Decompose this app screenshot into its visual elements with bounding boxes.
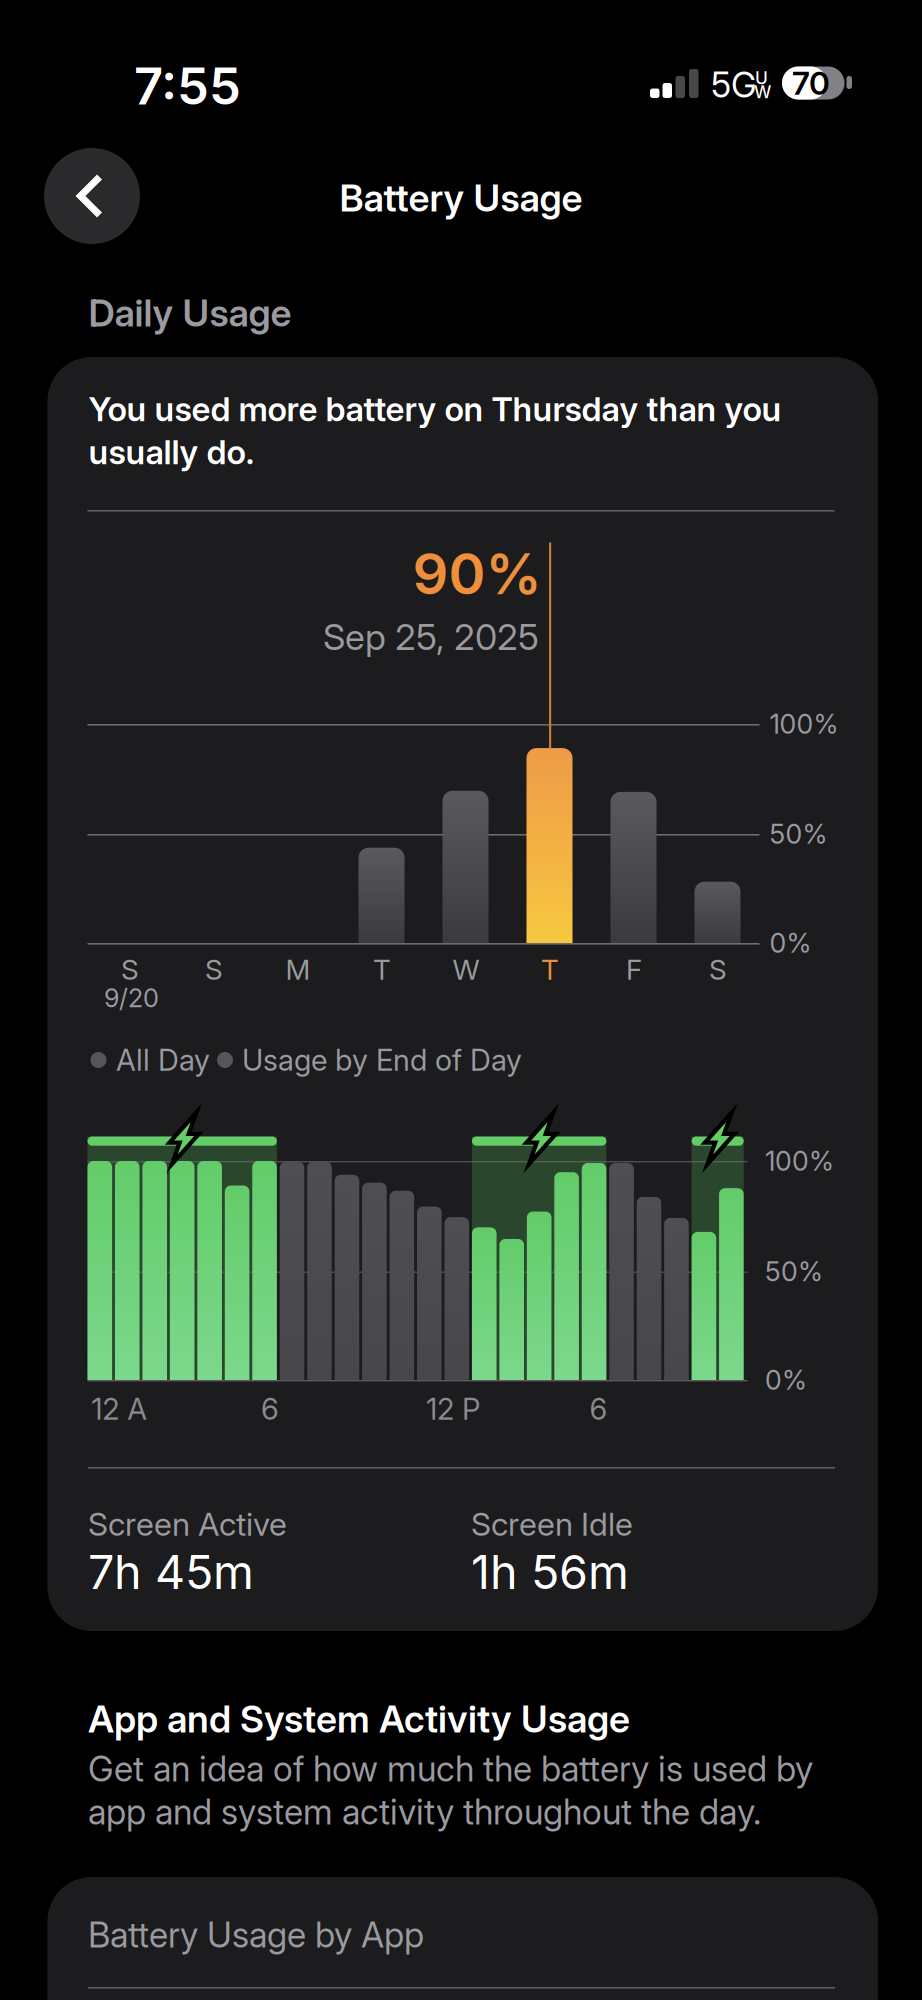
staticText: T (373, 953, 391, 986)
staticText: app and system activity throughout the d… (88, 1791, 761, 1833)
staticText: 6 (589, 1391, 607, 1427)
staticText: 7:55 (134, 55, 241, 117)
staticText: App and System Activity Usage (88, 1696, 630, 1742)
staticText: W (754, 81, 771, 102)
staticText: 0% (769, 927, 811, 959)
staticText: Battery Usage (339, 175, 582, 221)
staticText: 70 (792, 64, 830, 102)
staticText: All Day (116, 1042, 210, 1078)
staticText: You used more battery on Thursday than y… (88, 389, 781, 429)
staticText: 1h 56m (471, 1544, 629, 1600)
staticText: 50% (769, 818, 827, 850)
staticText: Screen Idle (471, 1505, 633, 1543)
staticText: 6 (261, 1391, 279, 1427)
staticText: 9/20 (104, 983, 159, 1013)
staticText: Usage by End of Day (242, 1042, 522, 1078)
staticText: Battery Usage by App (88, 1914, 424, 1956)
staticText: T (541, 953, 559, 986)
staticText: W (452, 953, 479, 986)
staticText: 7h 45m (88, 1544, 254, 1600)
staticText: F (626, 953, 642, 986)
staticText: S (709, 953, 727, 986)
staticText: 50% (765, 1255, 823, 1288)
staticText: 100% (765, 1145, 834, 1177)
staticText: U (755, 67, 768, 88)
staticText: Screen Active (88, 1505, 287, 1543)
staticText: 0% (765, 1364, 807, 1396)
button[interactable]: Back (44, 148, 140, 244)
staticText: 5G (711, 64, 757, 106)
staticText: 12 A (91, 1391, 147, 1427)
staticText: Daily Usage (88, 290, 291, 336)
staticText: S (121, 953, 139, 986)
staticText: Get an idea of how much the battery is u… (88, 1748, 813, 1790)
staticText: M (285, 953, 310, 986)
staticText: S (205, 953, 223, 986)
staticText: 12 P (426, 1391, 480, 1427)
staticText: usually do. (88, 432, 254, 472)
staticText: 100% (769, 708, 838, 740)
staticText: 90% (412, 540, 541, 608)
staticText: Sep 25, 2025 (323, 615, 539, 659)
